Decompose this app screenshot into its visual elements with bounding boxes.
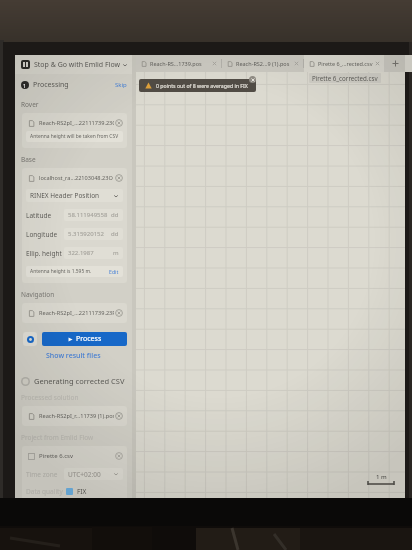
staticText: Generating corrected CSV bbox=[34, 376, 125, 386]
staticText: Rover bbox=[21, 100, 39, 109]
staticText: Ellip. height bbox=[26, 249, 64, 258]
staticText: localhost_ra...22103048.23O bbox=[39, 174, 114, 182]
staticText: Stop & Go with Emlid Flow bbox=[34, 60, 122, 70]
button[interactable]: Stop & Go with Emlid Flow bbox=[15, 55, 132, 74]
staticText: 322.1987 bbox=[68, 249, 94, 257]
staticText: Antenna height will be taken from CSV fi… bbox=[30, 133, 119, 140]
button[interactable]: Show result files bbox=[15, 351, 132, 361]
staticText: Pirette 6_corrected.csv bbox=[312, 74, 378, 82]
staticText: Reach-RS2pI_...22111739.23O bbox=[39, 119, 114, 127]
other: Remove file bbox=[115, 119, 123, 127]
button[interactable]: Reach-RS2pI_...22111739.23P bbox=[26, 309, 123, 317]
other: Remove file bbox=[115, 412, 123, 420]
staticText: Navigation bbox=[21, 290, 55, 299]
other: Remove file bbox=[115, 174, 123, 182]
staticText: 5.315920152 bbox=[68, 230, 104, 238]
button[interactable]: New tab bbox=[384, 55, 406, 72]
button[interactable]: Process bbox=[42, 332, 127, 346]
staticText: Reach-RS2pI_...22111739.23P bbox=[39, 309, 114, 317]
staticText: 1 m bbox=[376, 473, 387, 481]
staticText: Latitude bbox=[26, 211, 64, 220]
staticText: Reach-RS2pI_r...11739 (1).pos bbox=[39, 412, 114, 420]
button[interactable]: Reach-RS2...9 (1).pos bbox=[222, 55, 303, 72]
staticText: UTC+02:00 bbox=[68, 470, 101, 479]
staticText: Reach-RS...1739.pos bbox=[150, 60, 212, 67]
staticText: m bbox=[113, 249, 119, 257]
staticText: Show result files bbox=[46, 351, 101, 361]
button[interactable]: Dismiss warning bbox=[249, 76, 256, 83]
staticText: 58.111949558 bbox=[68, 211, 108, 219]
staticText: RINEX Header Position bbox=[30, 191, 100, 200]
other: Remove file bbox=[115, 309, 123, 317]
staticText: Reach-RS2...9 (1).pos bbox=[236, 60, 294, 67]
staticText: 0 points out of 8 were averaged in FIX bbox=[156, 82, 248, 89]
staticText: FIX bbox=[77, 487, 87, 496]
staticText: Base bbox=[21, 155, 36, 164]
staticText: Skip bbox=[115, 81, 127, 89]
button[interactable]: localhost_ra...22103048.23O bbox=[26, 174, 123, 182]
button[interactable]: Reach-RS2pI_r...11739 (1).pos bbox=[26, 412, 123, 420]
staticText: Pirette 6_...rected.csv bbox=[318, 60, 375, 67]
button[interactable]: Processing options bbox=[23, 332, 37, 346]
other: Remove file bbox=[115, 452, 123, 460]
staticText: Process bbox=[76, 334, 102, 344]
staticText: Project from Emlid Flow bbox=[21, 433, 94, 442]
staticText: Edit bbox=[109, 268, 119, 275]
staticText: Processed solution bbox=[21, 393, 79, 402]
staticText: Antenna height is 1.595 m. bbox=[30, 268, 92, 275]
button[interactable]: 1 bbox=[15, 76, 132, 93]
button[interactable]: Pirette 6_...rected.csv bbox=[304, 55, 384, 72]
staticText: dd bbox=[111, 211, 119, 219]
button[interactable]: RINEX Header Position bbox=[26, 189, 123, 202]
staticText: 1 bbox=[23, 82, 27, 89]
button[interactable]: Reach-RS...1739.pos bbox=[136, 55, 221, 72]
staticText: Data quality bbox=[26, 487, 66, 496]
staticText: Pirette 6.csv bbox=[39, 452, 115, 460]
staticText: Time zone bbox=[26, 470, 64, 479]
staticText: dd bbox=[111, 230, 119, 238]
button[interactable]: Pirette 6.csv bbox=[26, 452, 123, 460]
staticText: Longitude bbox=[26, 230, 64, 239]
button[interactable]: UTC+02:00 bbox=[64, 468, 123, 480]
staticText: Processing bbox=[33, 80, 69, 90]
button[interactable]: Reach-RS2pI_...22111739.23O bbox=[26, 119, 123, 127]
